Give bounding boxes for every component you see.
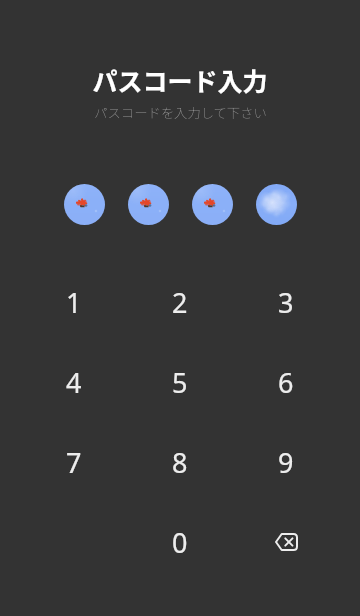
staticText: 5 <box>172 364 188 401</box>
staticText: 7 <box>66 444 82 481</box>
button[interactable]: 5 <box>127 342 233 422</box>
staticText: 3 <box>278 284 294 321</box>
staticText: 2 <box>172 284 188 321</box>
button[interactable]: 7 <box>21 422 127 502</box>
button[interactable]: 1 <box>21 262 127 342</box>
button[interactable]: 0 <box>127 502 233 582</box>
staticText: 1 <box>66 284 82 321</box>
button[interactable]: 4 <box>21 342 127 422</box>
button[interactable]: Backspace <box>233 502 338 582</box>
staticText: 4 <box>66 364 82 401</box>
button[interactable]: 2 <box>127 262 233 342</box>
staticText: 0 <box>172 524 188 561</box>
button[interactable]: 8 <box>127 422 233 502</box>
button[interactable]: 9 <box>233 422 338 502</box>
staticText: 6 <box>278 364 294 401</box>
button[interactable]: 6 <box>233 342 338 422</box>
staticText: パスコード入力 <box>92 62 268 98</box>
button[interactable]: 3 <box>233 262 338 342</box>
staticText: 8 <box>172 444 188 481</box>
staticText: パスコードを入力して下さい <box>94 103 267 122</box>
staticText: 9 <box>278 444 294 481</box>
